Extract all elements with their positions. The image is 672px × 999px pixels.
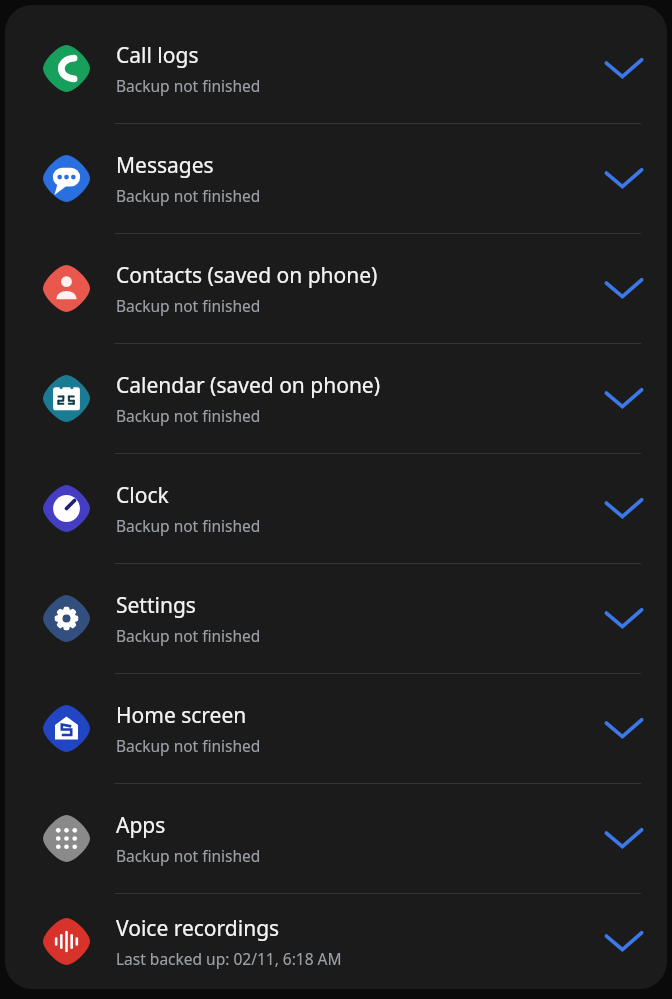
staticText: Backup not finished <box>116 515 261 536</box>
button[interactable]: Apps <box>5 784 667 893</box>
button[interactable]: Clock included in backup <box>581 454 667 563</box>
staticText: Contacts (saved on phone) <box>116 261 378 290</box>
button[interactable]: Home screen <box>5 674 667 783</box>
staticText: Apps <box>116 811 166 840</box>
staticText: Backup not finished <box>116 295 261 316</box>
button[interactable]: Calendar (saved on phone) included in ba… <box>581 344 667 453</box>
button[interactable]: Clock <box>5 454 667 563</box>
button[interactable]: Settings included in backup <box>581 564 667 673</box>
staticText: Backup not finished <box>116 405 261 426</box>
staticText: Messages <box>116 151 214 180</box>
button[interactable]: Settings <box>5 564 667 673</box>
button[interactable]: Messages included in backup <box>581 124 667 233</box>
button[interactable]: Apps included in backup <box>581 784 667 893</box>
staticText: Call logs <box>116 41 199 70</box>
button[interactable]: Home screen included in backup <box>581 674 667 783</box>
button[interactable]: Voice recordings included in backup <box>581 894 667 989</box>
button[interactable]: Contacts (saved on phone) <box>5 234 667 343</box>
staticText: Home screen <box>116 701 247 730</box>
button[interactable]: Call logs included in backup <box>581 14 667 123</box>
staticText: Backup not finished <box>116 185 261 206</box>
button[interactable]: Call logs <box>5 14 667 123</box>
button[interactable]: Voice recordings <box>5 894 667 989</box>
staticText: Voice recordings <box>116 914 280 943</box>
button[interactable]: Contacts (saved on phone) included in ba… <box>581 234 667 343</box>
staticText: Backup not finished <box>116 625 261 646</box>
staticText: Backup not finished <box>116 75 261 96</box>
staticText: Calendar (saved on phone) <box>116 371 381 400</box>
button[interactable]: Messages <box>5 124 667 233</box>
staticText: Last backed up: 02/11, 6:18 AM <box>116 948 342 969</box>
staticText: Backup not finished <box>116 845 261 866</box>
staticText: Clock <box>116 481 169 510</box>
button[interactable]: Calendar (saved on phone) <box>5 344 667 453</box>
staticText: Settings <box>116 591 196 620</box>
staticText: Backup not finished <box>116 735 261 756</box>
